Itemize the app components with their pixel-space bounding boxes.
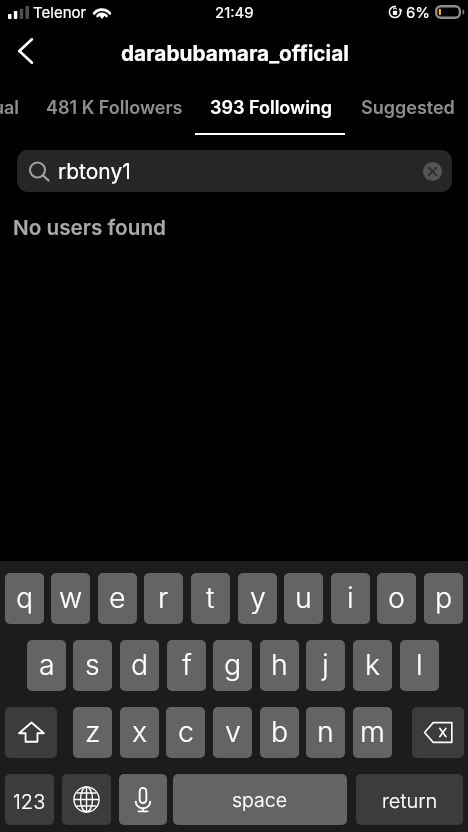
staticText: g xyxy=(224,647,242,681)
button[interactable]: p xyxy=(424,573,463,624)
button[interactable]: Switch keyboard xyxy=(62,774,111,825)
button[interactable]: rbtony1 xyxy=(17,150,452,192)
staticText: 6% xyxy=(406,3,431,21)
button[interactable]: Shift xyxy=(5,707,57,758)
staticText: k xyxy=(365,647,381,681)
button[interactable]: Backspace xyxy=(412,707,464,758)
button[interactable]: l xyxy=(400,640,439,691)
staticText: y xyxy=(250,580,266,614)
button[interactable]: return xyxy=(356,774,463,825)
button[interactable]: w xyxy=(51,573,90,624)
button[interactable]: Dictation xyxy=(119,774,167,825)
staticText: s xyxy=(85,647,100,681)
button[interactable]: h xyxy=(260,640,299,691)
staticText: o xyxy=(388,580,405,614)
button[interactable]: t xyxy=(191,573,230,624)
staticText: i xyxy=(347,580,354,614)
staticText: p xyxy=(435,580,453,614)
staticText: l xyxy=(416,647,423,681)
staticText: b xyxy=(271,714,289,748)
button[interactable]: r xyxy=(144,573,183,624)
staticText: rbtony1 xyxy=(58,159,422,184)
button[interactable]: g xyxy=(213,640,252,691)
button[interactable]: x xyxy=(120,707,159,758)
staticText: t xyxy=(206,580,215,614)
button[interactable]: n xyxy=(306,707,345,758)
button[interactable]: a xyxy=(27,640,66,691)
staticText: d xyxy=(131,647,149,681)
button[interactable]: Back xyxy=(1,27,49,75)
staticText: ual xyxy=(0,97,20,119)
staticText: z xyxy=(85,714,101,748)
button[interactable]: space xyxy=(173,774,347,825)
staticText: e xyxy=(109,580,126,614)
button[interactable]: f xyxy=(167,640,206,691)
staticText: darabubamara_official xyxy=(121,41,349,66)
button[interactable]: i xyxy=(331,573,370,624)
button[interactable]: o xyxy=(377,573,416,624)
staticText: space xyxy=(232,788,288,812)
staticText: 481 K Followers xyxy=(46,97,183,119)
button[interactable]: c xyxy=(166,707,205,758)
button[interactable]: v xyxy=(213,707,252,758)
button[interactable]: j xyxy=(306,640,345,691)
staticText: q xyxy=(16,580,34,614)
staticText: f xyxy=(182,647,192,681)
staticText: r xyxy=(158,580,169,614)
button[interactable]: 481 K Followers xyxy=(31,89,198,127)
button[interactable]: 123 xyxy=(5,774,54,825)
button[interactable]: k xyxy=(353,640,392,691)
staticText: m xyxy=(360,714,385,748)
staticText: No users found xyxy=(13,215,166,240)
staticText: n xyxy=(317,714,334,748)
staticText: a xyxy=(39,647,55,681)
staticText: Telenor xyxy=(33,3,87,21)
staticText: c xyxy=(178,714,194,748)
staticText: j xyxy=(322,647,329,681)
button[interactable]: d xyxy=(120,640,159,691)
button[interactable]: ual xyxy=(0,89,20,127)
button[interactable]: q xyxy=(5,573,44,624)
button[interactable]: Clear text xyxy=(422,161,442,181)
button[interactable]: y xyxy=(238,573,277,624)
staticText: v xyxy=(225,714,241,748)
button[interactable]: z xyxy=(73,707,112,758)
staticText: u xyxy=(295,580,312,614)
staticText: 393 Following xyxy=(210,97,333,119)
button[interactable]: s xyxy=(73,640,112,691)
button[interactable]: Suggested xyxy=(346,89,468,127)
button[interactable]: e xyxy=(98,573,137,624)
button[interactable]: u xyxy=(284,573,323,624)
staticText: x xyxy=(132,714,148,748)
button[interactable]: 393 Following xyxy=(195,89,348,127)
staticText: 123 xyxy=(13,790,46,814)
staticText: 21:49 xyxy=(215,3,254,21)
button[interactable]: m xyxy=(353,707,392,758)
button[interactable]: b xyxy=(260,707,299,758)
staticText: Suggested xyxy=(361,97,455,119)
staticText: h xyxy=(271,647,288,681)
staticText: return xyxy=(382,789,438,813)
staticText: w xyxy=(59,580,83,614)
